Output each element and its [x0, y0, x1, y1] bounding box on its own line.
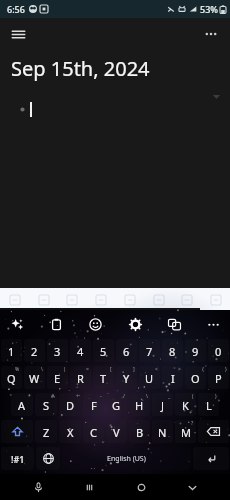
button[interactable]: Settings: [123, 312, 147, 336]
button[interactable]: Collapse: [209, 89, 223, 103]
button[interactable]: !#1: [1, 447, 34, 470]
button[interactable]: <: [139, 366, 160, 389]
button[interactable]: #: [35, 393, 57, 416]
button[interactable]: X: [59, 420, 81, 443]
button[interactable]: Toolbar action 2: [36, 292, 51, 307]
button[interactable]: 5: [93, 339, 114, 362]
button[interactable]: Translate: [162, 312, 186, 336]
staticText: English (US): [107, 454, 146, 464]
staticText: 9: [192, 344, 199, 359]
button[interactable]: Recent apps: [76, 474, 102, 500]
staticText: [: [110, 366, 112, 373]
button[interactable]: 0: [208, 339, 229, 362]
button[interactable]: %: [1, 366, 22, 389]
button[interactable]: Backspace: [198, 420, 229, 443]
staticText: S: [43, 398, 50, 413]
staticText: <: [155, 366, 158, 373]
button[interactable]: More options: [198, 21, 224, 47]
button[interactable]: ?: [175, 420, 196, 443]
button[interactable]: Toolbar action 8: [208, 292, 223, 307]
button[interactable]: N: [152, 420, 173, 443]
button[interactable]: Back: [179, 474, 205, 500]
button[interactable]: 3: [47, 339, 68, 362]
staticText: 7: [146, 344, 153, 359]
staticText: L: [206, 398, 212, 413]
button[interactable]: Voice input: [25, 474, 51, 500]
button[interactable]: \: [129, 393, 150, 416]
button[interactable]: >: [162, 366, 183, 389]
button[interactable]: ): [198, 393, 219, 416]
button[interactable]: V: [106, 420, 127, 443]
button[interactable]: 4: [70, 339, 91, 362]
staticText: X: [67, 425, 74, 440]
staticText: R: [77, 371, 84, 386]
button[interactable]: Assistant: [5, 312, 29, 336]
button[interactable]: Toolbar action 7: [179, 292, 194, 307]
button[interactable]: C: [83, 420, 104, 443]
staticText: (: [192, 393, 194, 400]
staticText: >: [178, 366, 181, 373]
button[interactable]: Change language: [36, 447, 60, 470]
button[interactable]: Toolbar action 4: [93, 292, 108, 307]
button[interactable]: B: [129, 420, 150, 443]
button[interactable]: Toolbar action 5: [122, 292, 137, 307]
button[interactable]: Shift: [1, 420, 33, 443]
staticText: K: [182, 398, 189, 413]
staticText: 4: [77, 344, 84, 359]
button[interactable]: Home: [128, 474, 154, 500]
button[interactable]: (: [175, 393, 196, 416]
staticText: D: [66, 398, 75, 413]
button[interactable]: 7: [139, 339, 160, 362]
button[interactable]: }: [208, 366, 229, 389]
staticText: I: [171, 371, 175, 386]
staticText: B: [136, 425, 144, 440]
staticText: 6: [123, 344, 130, 359]
staticText: 1: [8, 344, 15, 359]
staticText: U: [145, 371, 154, 386]
staticText: T: [100, 371, 107, 386]
button[interactable]: 8: [162, 339, 183, 362]
button[interactable]: More: [201, 312, 225, 336]
staticText: C: [90, 425, 97, 440]
button[interactable]: +: [59, 393, 81, 416]
button[interactable]: Z: [35, 420, 57, 443]
staticText: G: [112, 398, 121, 413]
button[interactable]: Emoji: [83, 312, 107, 336]
button[interactable]: _: [152, 393, 173, 416]
button[interactable]: \: [24, 366, 45, 389]
staticText: /: [123, 393, 125, 400]
button[interactable]: 1: [1, 339, 22, 362]
staticText: 3: [54, 344, 61, 359]
staticText: V: [113, 425, 120, 440]
staticText: ]: [133, 366, 135, 373]
button[interactable]: Enter: [193, 447, 229, 470]
button[interactable]: /: [106, 393, 127, 416]
staticText: \: [146, 393, 148, 400]
button[interactable]: *: [11, 393, 33, 416]
button[interactable]: =: [70, 366, 91, 389]
button[interactable]: [: [93, 366, 114, 389]
staticText: A: [18, 398, 26, 413]
button[interactable]: Space: [62, 447, 191, 470]
staticText: Q: [7, 371, 16, 386]
staticText: ?: [191, 420, 194, 427]
button[interactable]: -: [83, 393, 104, 416]
button[interactable]: 2: [24, 339, 45, 362]
button[interactable]: |: [47, 366, 68, 389]
staticText: ): [215, 393, 217, 400]
button[interactable]: 9: [185, 339, 206, 362]
button[interactable]: Toolbar action 1: [7, 292, 22, 307]
button[interactable]: 6: [116, 339, 137, 362]
button[interactable]: Menu: [5, 21, 31, 47]
staticText: 0: [215, 344, 222, 359]
button[interactable]: {: [185, 366, 206, 389]
button[interactable]: Clipboard: [44, 312, 68, 336]
staticText: }: [225, 366, 227, 373]
staticText: =: [86, 366, 89, 373]
button[interactable]: Toolbar action 3: [64, 292, 79, 307]
staticText: H: [135, 398, 144, 413]
button[interactable]: ]: [116, 366, 137, 389]
button[interactable]: Toolbar action 6: [151, 292, 166, 307]
staticText: Sep 15th, 2024: [11, 55, 150, 82]
staticText: Y: [123, 371, 130, 386]
